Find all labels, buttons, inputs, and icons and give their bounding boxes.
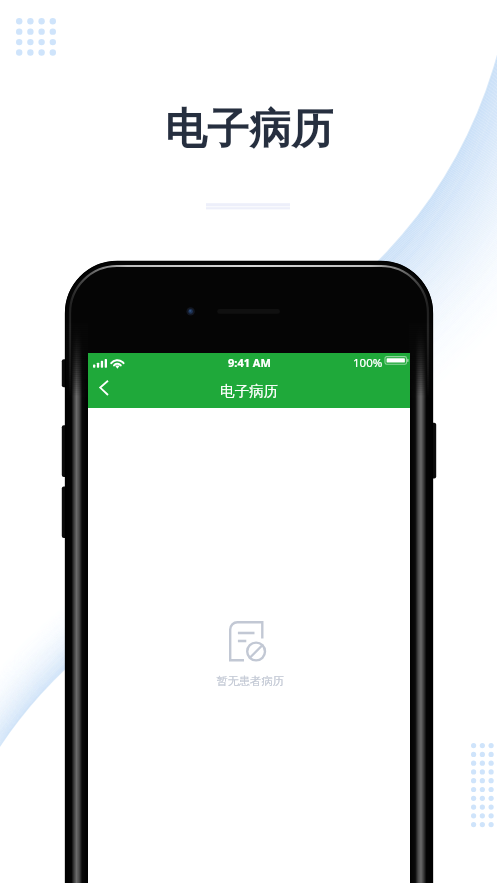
staticText: 暂无患者病历 bbox=[216, 674, 284, 688]
staticText: 电子病历 bbox=[220, 382, 279, 400]
staticText: 9:41 AM bbox=[228, 355, 271, 370]
staticText: 100% bbox=[353, 355, 383, 371]
button[interactable]: 返回 bbox=[88, 374, 122, 408]
staticText: 电子病历 bbox=[165, 103, 333, 156]
